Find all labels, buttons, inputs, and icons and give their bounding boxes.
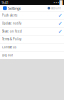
staticText: Log out <box>2 53 13 57</box>
staticText: ✓ <box>58 12 62 18</box>
staticText: ✓ <box>58 20 62 26</box>
staticText: •••█ <box>53 0 62 5</box>
staticText: ✓ <box>58 28 62 34</box>
button[interactable]: Push alerts <box>0 12 64 19</box>
staticText: 9:41 <box>1 0 8 5</box>
staticText: Terms & Policy <box>2 37 21 41</box>
button[interactable]: Contact us <box>0 43 64 51</box>
button[interactable]: Settings <box>0 5 64 11</box>
button[interactable]: Log out <box>0 51 64 59</box>
staticText: Settings <box>8 5 21 11</box>
staticText: Share on feed <box>2 30 22 33</box>
button[interactable]: Share on feed <box>0 28 64 35</box>
staticText: Contact us <box>2 45 16 49</box>
staticText: account <box>51 6 61 10</box>
button[interactable]: Terms & Policy <box>0 35 64 43</box>
staticText: Push alerts <box>2 14 17 17</box>
button[interactable]: Update notify <box>0 20 64 27</box>
staticText: Update notify <box>2 22 21 25</box>
